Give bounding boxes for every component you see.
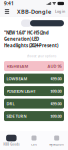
staticText: XBB Goods — [3, 143, 19, 146]
button[interactable]: My Account — [45, 131, 68, 150]
staticText: SIDE TURN — [6, 113, 26, 119]
staticText: Log in — [55, 9, 65, 14]
button[interactable]: HIGHBEAM — [4, 61, 64, 71]
staticText: DRL — [6, 101, 14, 106]
staticText: "NEW 1.6.0" HC-H5 (2nd — [4, 30, 49, 36]
button[interactable]: Log in — [54, 7, 66, 16]
staticText: $99.00 — [50, 113, 61, 119]
staticText: AUD 95 — [47, 63, 61, 69]
staticText: LOWBEAM — [6, 76, 27, 81]
button[interactable]: DRL — [4, 99, 64, 109]
staticText: XBB-Dongle — [17, 8, 51, 15]
staticText: 9:41 — [4, 0, 14, 7]
staticText: POSITION LIGHT — [6, 88, 35, 94]
staticText: $99.00 — [50, 101, 61, 106]
button[interactable]: SIDE TURN — [4, 111, 64, 121]
staticText: $99.00 — [50, 88, 61, 94]
staticText: HIGHBEAM — [6, 63, 28, 69]
staticText: My Account — [49, 143, 64, 146]
button[interactable]: LOWBEAM — [4, 74, 64, 84]
staticText: Cart — [31, 143, 37, 146]
button[interactable]: Cart — [23, 131, 45, 150]
button[interactable]: Menu — [2, 7, 12, 16]
button[interactable]: POSITION LIGHT — [4, 86, 64, 96]
staticText: Headlights (2024-Present) — [4, 43, 58, 48]
staticText: Generation) LED — [4, 36, 39, 42]
staticText: choose your options — [27, 54, 56, 58]
button[interactable]: XBB Goods — [0, 131, 23, 150]
staticText: $99.00 — [50, 76, 61, 81]
